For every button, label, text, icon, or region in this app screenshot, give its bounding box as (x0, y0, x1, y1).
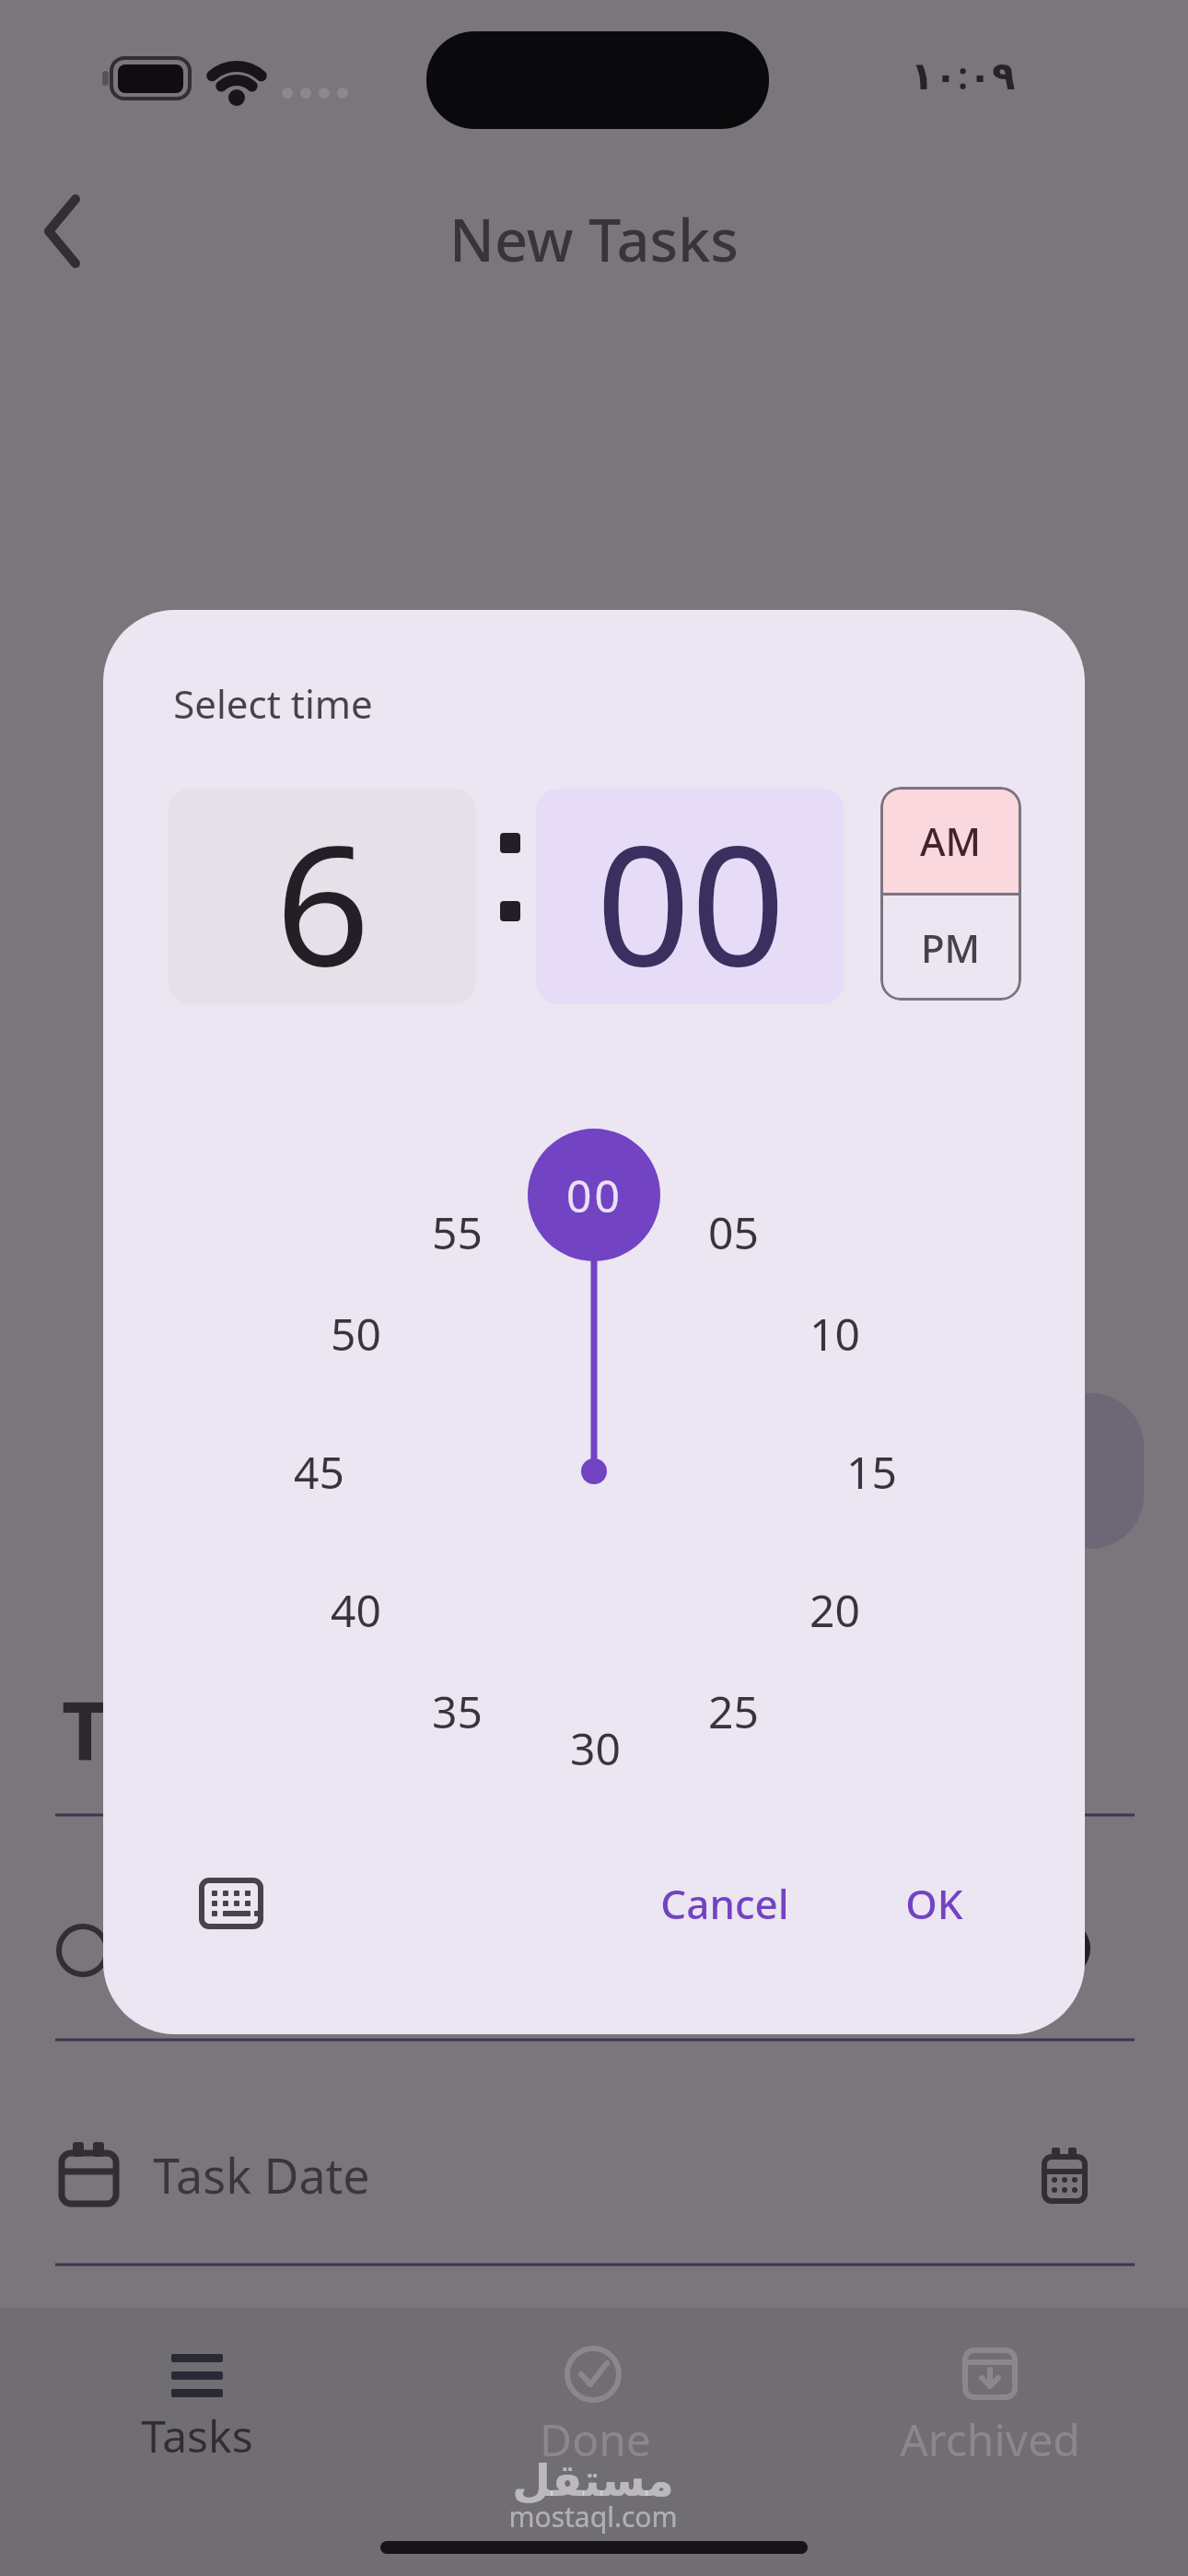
staticText: 00 (566, 1165, 623, 1225)
button[interactable]: Cancel (623, 1867, 826, 1940)
button[interactable] (507, 2331, 681, 2469)
staticText: Tasks (141, 2406, 253, 2463)
staticText: 15 (846, 1442, 897, 1502)
staticText: 50 (331, 1304, 381, 1364)
staticText: 20 (809, 1580, 860, 1640)
button[interactable]: 05 (678, 1200, 788, 1264)
button[interactable]: 50 (300, 1301, 411, 1365)
button[interactable]: AM (880, 787, 1021, 894)
staticText: Select time (173, 677, 373, 730)
button[interactable]: PM (880, 894, 1021, 1001)
staticText: New Tasks (449, 200, 739, 277)
staticText: T (62, 1674, 109, 1775)
staticText: Done (540, 2409, 651, 2466)
staticText: Cancel (660, 1876, 789, 1931)
staticText: 25 (708, 1681, 759, 1741)
staticText: 05 (708, 1202, 759, 1262)
button[interactable]: OK (869, 1867, 998, 1940)
button[interactable]: 00 (536, 789, 844, 1004)
button[interactable] (51, 2119, 1137, 2234)
staticText: Archived (900, 2409, 1080, 2466)
staticText: mostaql.com (508, 2498, 678, 2535)
staticText: Task Date (153, 2142, 370, 2207)
staticText: 30 (570, 1718, 621, 1778)
button[interactable] (111, 2331, 285, 2469)
button[interactable] (903, 2331, 1077, 2469)
button[interactable]: 40 (300, 1577, 411, 1642)
button[interactable] (28, 184, 120, 276)
button[interactable]: 25 (678, 1679, 788, 1743)
staticText: 45 (294, 1442, 344, 1502)
staticText: 10 (809, 1304, 860, 1364)
button[interactable]: 55 (402, 1200, 512, 1264)
button[interactable]: 6 (169, 789, 476, 1004)
button[interactable]: 30 (540, 1715, 650, 1780)
button[interactable]: 15 (816, 1439, 926, 1504)
staticText: 35 (432, 1681, 483, 1741)
button[interactable]: 35 (402, 1679, 512, 1743)
button[interactable]: 10 (779, 1301, 890, 1365)
button[interactable] (183, 1862, 279, 1945)
staticText: 40 (331, 1580, 381, 1640)
staticText: ١٠:٠٩ (910, 48, 1016, 100)
staticText: OK (905, 1876, 963, 1931)
button[interactable]: 20 (779, 1577, 890, 1642)
staticText: PM (921, 921, 981, 974)
staticText: 6 (275, 789, 370, 1004)
staticText: AM (920, 814, 982, 867)
staticText: 00 (596, 789, 786, 1004)
staticText: 55 (432, 1202, 483, 1262)
staticText: مستقل (512, 2454, 674, 2506)
button[interactable]: 45 (263, 1439, 374, 1504)
